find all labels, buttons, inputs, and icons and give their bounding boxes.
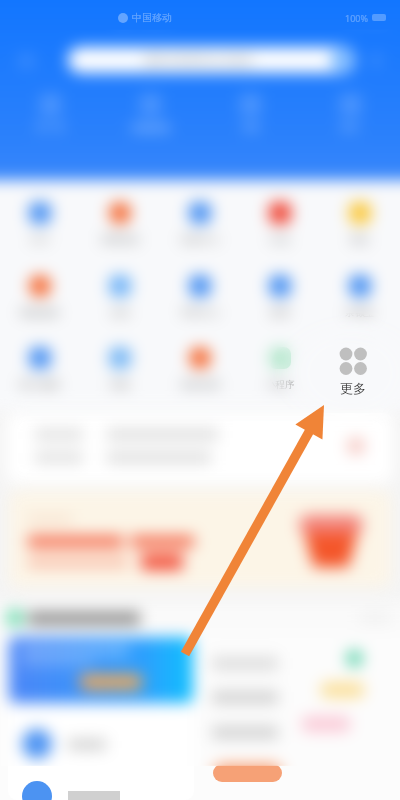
staticText: 更多: [340, 380, 366, 396]
staticText: 市民中心: [180, 306, 220, 319]
staticText: 消费贷款: [100, 233, 140, 246]
staticText: 蚂蚁森林: [20, 306, 60, 319]
staticText: 黄金: [350, 233, 370, 246]
staticText: 红包: [270, 233, 290, 246]
button[interactable]: 转账: [80, 347, 160, 391]
button[interactable]: [0, 603, 400, 633]
button[interactable]: [7, 413, 393, 483]
button[interactable]: [9, 491, 391, 587]
staticText: 黄金: [350, 233, 370, 246]
button[interactable]: 蚂蚁森林: [0, 275, 80, 319]
staticText: 搜索你想要的生活服务: [144, 53, 254, 67]
staticText: 医疗健康: [20, 378, 60, 391]
staticText: 100%: [345, 12, 368, 24]
staticText: 付钱/收钱: [130, 121, 170, 133]
staticText: 股票: [270, 306, 290, 319]
button[interactable]: Menu: [14, 48, 38, 72]
button[interactable]: [9, 491, 391, 587]
button[interactable]: 芝麻信用: [160, 347, 240, 391]
button[interactable]: 出行: [0, 202, 80, 246]
button[interactable]: 芝麻信用: [160, 347, 240, 391]
staticText: 红包: [270, 233, 290, 246]
staticText: 股票: [270, 306, 290, 319]
button[interactable]: 红包: [240, 202, 320, 246]
staticText: 中国移动: [132, 11, 172, 24]
button[interactable]: [22, 719, 180, 769]
button[interactable]: 运动: [80, 275, 160, 319]
staticText: 芝麻信用: [180, 378, 220, 391]
staticText: 100%: [345, 12, 368, 24]
staticText: 余额宝: [345, 306, 375, 319]
button[interactable]: 搜索你想要的生活服务: [68, 47, 354, 73]
staticText: 余额宝: [345, 306, 375, 319]
button[interactable]: 充值中心: [160, 202, 240, 246]
button[interactable]: [7, 413, 393, 483]
button[interactable]: 黄金: [320, 202, 400, 246]
button[interactable]: 出行: [0, 202, 80, 246]
button[interactable]: 扫一扫: [0, 94, 100, 132]
button[interactable]: 蚂蚁森林: [0, 275, 80, 319]
staticText: 付钱/收钱: [130, 121, 170, 133]
button[interactable]: 小程序: [240, 347, 320, 391]
staticText: 搜索你想要的生活服务: [144, 53, 254, 67]
staticText: 小程序: [265, 378, 295, 391]
button[interactable]: 小程序: [240, 347, 320, 391]
button[interactable]: 充值中心: [160, 202, 240, 246]
staticText: 市民中心: [180, 306, 220, 319]
button[interactable]: [9, 637, 193, 703]
staticText: 芝麻信用: [180, 378, 220, 391]
button[interactable]: 付钱/收钱: [100, 94, 200, 133]
button[interactable]: 余额宝: [320, 275, 400, 319]
staticText: 蚂蚁森林: [20, 306, 60, 319]
staticText: 充值中心: [180, 233, 220, 246]
button[interactable]: 出行: [300, 94, 400, 132]
button[interactable]: 转账: [80, 347, 160, 391]
button[interactable]: 余额宝: [320, 275, 400, 319]
button[interactable]: 付钱/收钱: [100, 94, 200, 133]
staticText: 出行: [30, 233, 50, 246]
button[interactable]: 更多: [313, 347, 393, 396]
button[interactable]: 消费贷款: [80, 202, 160, 246]
staticText: 小程序: [265, 378, 295, 391]
button[interactable]: Menu: [14, 48, 38, 72]
button[interactable]: 医疗健康: [0, 347, 80, 391]
button[interactable]: 卡包: [200, 94, 300, 132]
button[interactable]: 股票: [240, 275, 320, 319]
staticText: 充值中心: [180, 233, 220, 246]
button[interactable]: [22, 771, 180, 800]
button[interactable]: [0, 603, 400, 633]
button[interactable]: 扫一扫: [0, 94, 100, 132]
button[interactable]: 黄金: [320, 202, 400, 246]
button[interactable]: 更多: [313, 347, 393, 396]
staticText: 医疗健康: [20, 378, 60, 391]
button[interactable]: 医疗健康: [0, 347, 80, 391]
button[interactable]: [22, 719, 180, 769]
staticText: 消费贷款: [100, 233, 140, 246]
staticText: 中国移动: [132, 11, 172, 24]
button[interactable]: [22, 771, 180, 800]
button[interactable]: [9, 637, 193, 703]
button[interactable]: 股票: [240, 275, 320, 319]
button[interactable]: 搜索你想要的生活服务: [68, 47, 354, 73]
button[interactable]: 消费贷款: [80, 202, 160, 246]
staticText: 更多: [340, 380, 366, 396]
staticText: 出行: [30, 233, 50, 246]
button[interactable]: 出行: [300, 94, 400, 132]
button[interactable]: 市民中心: [160, 275, 240, 319]
button[interactable]: 红包: [240, 202, 320, 246]
button[interactable]: 市民中心: [160, 275, 240, 319]
button[interactable]: 卡包: [200, 94, 300, 132]
button[interactable]: 运动: [80, 275, 160, 319]
